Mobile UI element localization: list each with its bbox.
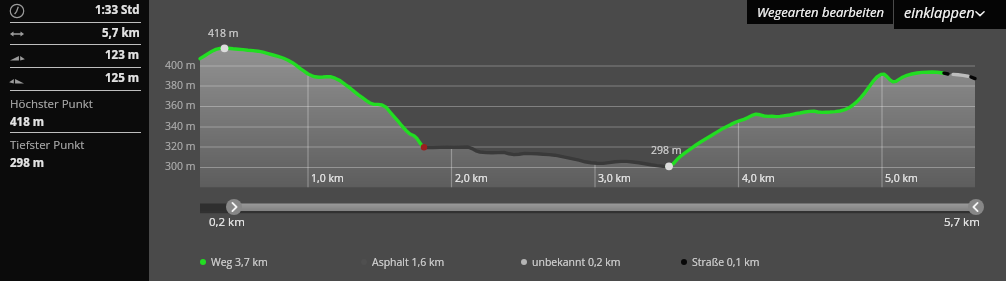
staticText: 400 m: [165, 58, 196, 72]
button[interactable]: Tiefster Punkt: [10, 137, 141, 171]
button[interactable]: Höchster Punkt: [10, 96, 141, 130]
button[interactable]: einklappen: [894, 0, 1006, 29]
staticText: 1,0 km: [311, 171, 344, 185]
staticText: 418 m: [208, 26, 239, 40]
staticText: 380 m: [165, 78, 196, 92]
staticText: 5,7 km: [102, 25, 140, 41]
staticText: 3,0 km: [598, 171, 631, 185]
staticText: 4,0 km: [742, 171, 775, 185]
button[interactable]: 5,7 km: [0, 23, 149, 45]
button[interactable]: 5,7 km: [944, 214, 980, 230]
staticText: Tiefster Punkt: [10, 137, 85, 153]
button[interactable]: unbekannt 0,2 km: [521, 255, 621, 269]
staticText: 418 m: [10, 114, 45, 130]
staticText: einklappen: [904, 3, 975, 23]
staticText: 2,0 km: [455, 171, 488, 185]
button[interactable]: Weg 3,7 km: [200, 255, 268, 269]
staticText: 125 m: [105, 70, 140, 86]
button[interactable]: Startpunkt verschieben: [226, 199, 242, 215]
button[interactable]: Straße 0,1 km: [681, 255, 760, 269]
staticText: Höchster Punkt: [10, 96, 93, 112]
button[interactable]: Wegearten bearbeiten: [747, 0, 893, 24]
staticText: 298 m: [651, 143, 682, 157]
staticText: 298 m: [10, 155, 45, 171]
staticText: 340 m: [165, 119, 196, 133]
staticText: 300 m: [165, 159, 196, 173]
staticText: unbekannt 0,2 km: [532, 255, 621, 269]
staticText: 320 m: [165, 139, 196, 153]
staticText: Straße 0,1 km: [692, 255, 760, 269]
button[interactable]: Asphalt 1,6 km: [361, 255, 445, 269]
staticText: Asphalt 1,6 km: [372, 255, 445, 269]
staticText: 123 m: [105, 47, 140, 63]
button[interactable]: Endpunkt verschieben: [968, 199, 984, 215]
button[interactable]: 123 m: [0, 45, 149, 67]
staticText: 5,0 km: [885, 171, 918, 185]
button[interactable]: 125 m: [0, 68, 149, 90]
staticText: 1:33 Std: [95, 2, 140, 18]
staticText: 360 m: [165, 98, 196, 112]
staticText: Wegearten bearbeiten: [757, 3, 884, 21]
staticText: Weg 3,7 km: [211, 255, 268, 269]
button[interactable]: 0,2 km: [209, 214, 245, 230]
staticText: 5,7 km: [944, 214, 980, 230]
button[interactable]: 1:33 Std: [0, 0, 149, 22]
staticText: 0,2 km: [209, 214, 245, 230]
